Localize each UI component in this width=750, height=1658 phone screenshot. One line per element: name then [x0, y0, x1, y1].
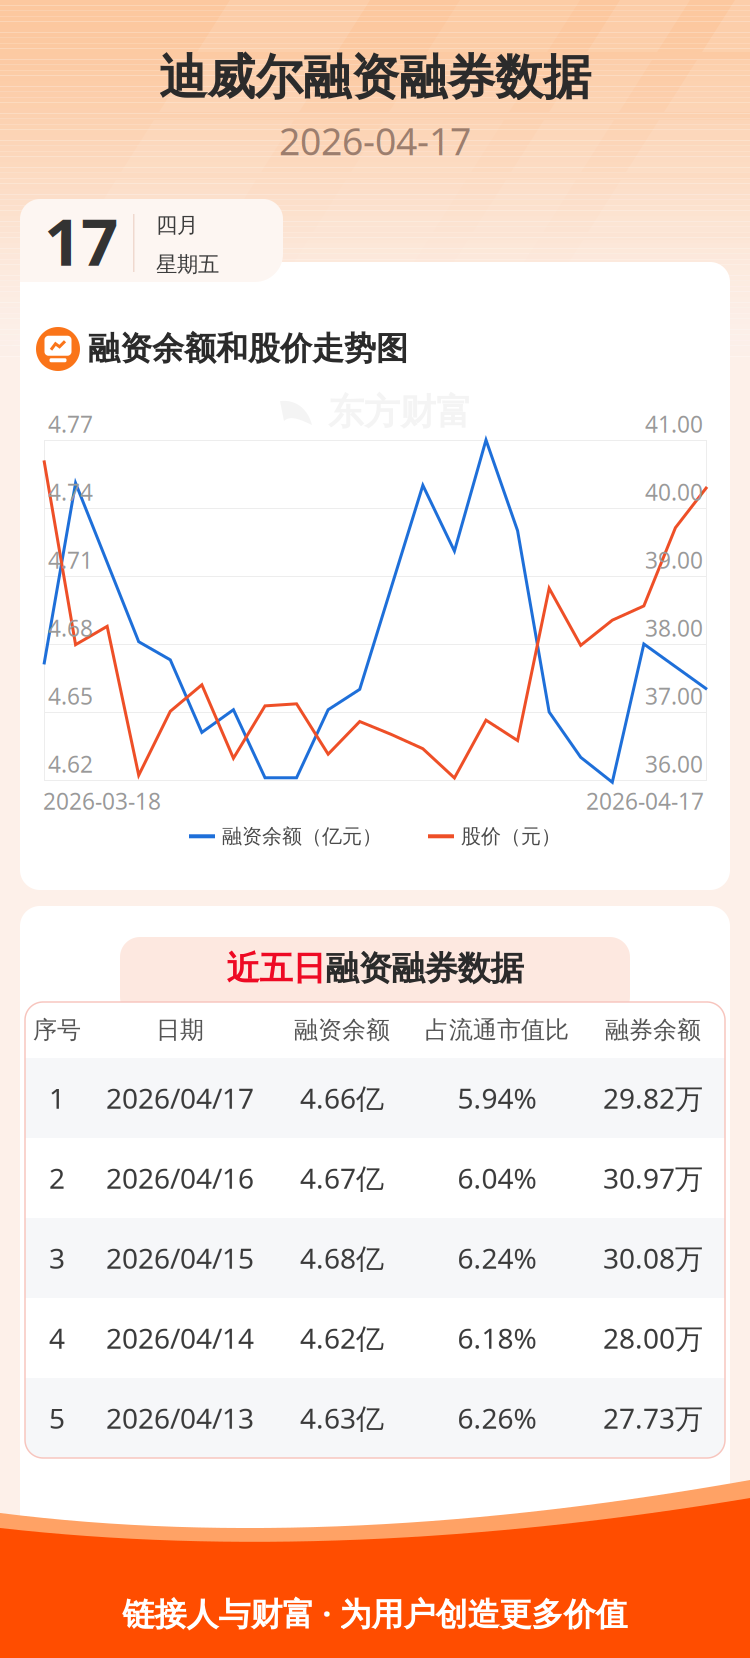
staticText: 2026-04-17 — [586, 786, 704, 816]
staticText: 4.77 — [48, 409, 93, 439]
staticText: 4.74 — [48, 477, 93, 507]
staticText: 2 — [49, 1159, 65, 1197]
staticText: 2026/04/17 — [106, 1079, 254, 1117]
staticText: 2026-04-17 — [279, 116, 471, 166]
staticText: 37.00 — [645, 681, 703, 711]
staticText: 40.00 — [645, 477, 703, 507]
staticText: 6.18% — [457, 1319, 536, 1357]
staticText: 39.00 — [645, 545, 703, 575]
staticText: 4.66亿 — [300, 1079, 384, 1117]
staticText: 27.73万 — [603, 1399, 703, 1437]
staticText: 4.68亿 — [300, 1239, 384, 1277]
staticText: 6.26% — [457, 1399, 536, 1437]
staticText: 2026/04/15 — [106, 1239, 254, 1277]
staticText: 4.71 — [48, 545, 93, 575]
staticText: 6.24% — [457, 1239, 536, 1277]
staticText: 融资余额和股价走势图 — [88, 329, 408, 368]
staticText: 2026/04/14 — [106, 1319, 254, 1357]
staticText: 4 — [49, 1319, 65, 1357]
staticText: 融券余额 — [605, 1015, 701, 1045]
staticText: 序号 — [33, 1015, 81, 1045]
staticText: 4.68 — [48, 613, 93, 643]
staticText: 4.62亿 — [300, 1319, 384, 1357]
staticText: 41.00 — [645, 409, 703, 439]
staticText: 东方财富 — [328, 390, 472, 434]
staticText: 占流通市值比 — [425, 1015, 569, 1045]
staticText: 2026/04/13 — [106, 1399, 254, 1437]
staticText: 链接人与财富 · 为用户创造更多价值 — [122, 1592, 627, 1634]
staticText: 3 — [49, 1239, 65, 1277]
staticText: 30.08万 — [603, 1239, 703, 1277]
staticText: 5 — [49, 1399, 65, 1437]
staticText: 4.62 — [48, 749, 93, 779]
staticText: 6.04% — [457, 1159, 536, 1197]
staticText: 融资融券数据 — [325, 948, 523, 989]
staticText: 1 — [49, 1079, 65, 1117]
staticText: 2026-03-18 — [43, 786, 161, 816]
staticText: 5.94% — [457, 1079, 536, 1117]
staticText: 17 — [44, 197, 118, 284]
staticText: 迪威尔融资融券数据 — [159, 48, 591, 107]
staticText: 4.65 — [48, 681, 93, 711]
staticText: 融资余额 — [294, 1015, 390, 1045]
staticText: 36.00 — [645, 749, 703, 779]
staticText: 2026/04/16 — [106, 1159, 254, 1197]
staticText: 日期 — [156, 1015, 204, 1045]
staticText: 融资余额（亿元） — [222, 824, 382, 849]
staticText: 29.82万 — [603, 1079, 703, 1117]
staticText: 38.00 — [645, 613, 703, 643]
staticText: 30.97万 — [603, 1159, 703, 1197]
staticText: 4.63亿 — [300, 1399, 384, 1437]
staticText: 星期五 — [156, 251, 219, 277]
staticText: 28.00万 — [603, 1319, 703, 1357]
staticText: 近五日 — [226, 948, 325, 989]
staticText: 股价（元） — [461, 824, 561, 849]
staticText: 四月 — [156, 212, 198, 238]
staticText: 4.67亿 — [300, 1159, 384, 1197]
